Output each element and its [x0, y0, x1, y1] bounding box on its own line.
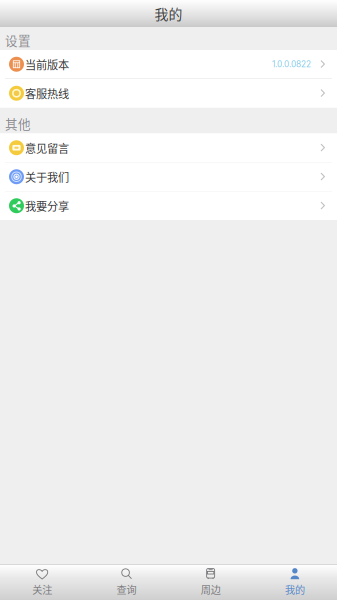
button[interactable]: 我的 — [253, 565, 337, 600]
button[interactable]: 我要分享 — [0, 191, 337, 220]
staticText: 其他 — [5, 114, 31, 132]
staticText: 查询 — [116, 582, 136, 597]
staticText: 关于我们 — [25, 169, 69, 185]
staticText: 1.0.0.0822 — [272, 59, 311, 69]
staticText: 客服热线 — [25, 85, 69, 101]
button[interactable]: 客服热线 — [0, 79, 337, 107]
button[interactable]: 关于我们 — [0, 162, 337, 191]
staticText: 我的 — [285, 582, 305, 597]
button[interactable]: 意见留言 — [0, 133, 337, 162]
staticText: 意见留言 — [25, 140, 69, 156]
button[interactable]: 查询 — [84, 565, 168, 600]
staticText: 设置 — [5, 31, 31, 49]
staticText: 我的 — [154, 3, 182, 24]
button[interactable]: 周边 — [168, 565, 253, 600]
staticText: 我要分享 — [25, 198, 69, 214]
button[interactable]: 关注 — [0, 565, 84, 600]
staticText: 当前版本 — [25, 56, 69, 72]
staticText: 关注 — [32, 582, 52, 597]
staticText: 周边 — [201, 582, 221, 597]
button[interactable]: 当前版本 — [0, 50, 337, 78]
